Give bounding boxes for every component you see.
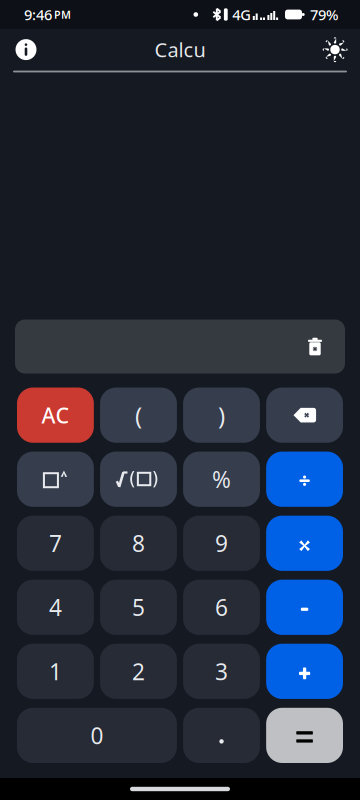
button[interactable] <box>266 580 343 635</box>
staticText: 6 <box>215 592 228 622</box>
staticText: PM <box>54 7 71 22</box>
button[interactable] <box>266 644 343 699</box>
staticText: % <box>212 464 231 494</box>
staticText: 4 <box>49 592 62 622</box>
staticText: 9 <box>215 528 228 558</box>
button[interactable]: 7 <box>17 516 94 571</box>
button[interactable]: AC <box>17 387 94 443</box>
button[interactable]: 2 <box>100 644 177 699</box>
button[interactable]: Toggle light and dark theme <box>323 38 347 62</box>
button[interactable]: Clear calculation history <box>298 319 332 373</box>
staticText: 5 <box>132 592 145 622</box>
staticText: 0 <box>90 720 103 750</box>
staticText: 1 <box>49 656 62 686</box>
button[interactable]: ( <box>100 387 177 443</box>
staticText: 9:46 <box>24 5 52 24</box>
button[interactable]: 5 <box>100 580 177 635</box>
button[interactable]: 9 <box>183 516 260 571</box>
button[interactable]: % <box>183 452 260 507</box>
button[interactable] <box>183 708 260 763</box>
button[interactable]: 1 <box>17 644 94 699</box>
button[interactable] <box>266 708 343 763</box>
button[interactable] <box>266 452 343 507</box>
button[interactable]: 3 <box>183 644 260 699</box>
button[interactable]: About this calculator <box>13 37 39 63</box>
button[interactable] <box>266 516 343 571</box>
button[interactable] <box>266 387 343 443</box>
staticText: 79% <box>310 5 338 24</box>
button[interactable]: 6 <box>183 580 260 635</box>
staticText: ( <box>135 399 142 431</box>
button[interactable] <box>17 452 94 507</box>
staticText: 7 <box>49 528 62 558</box>
staticText: 8 <box>132 528 145 558</box>
button[interactable]: 0 <box>17 708 177 763</box>
staticText: AC <box>41 401 69 429</box>
button[interactable] <box>100 452 177 507</box>
staticText: 4G <box>232 5 251 24</box>
staticText: 2 <box>132 656 145 686</box>
staticText: 3 <box>215 656 228 686</box>
button[interactable]: 8 <box>100 516 177 571</box>
staticText: ) <box>218 399 225 431</box>
staticText: Calcu <box>154 36 205 63</box>
button[interactable]: ) <box>183 387 260 443</box>
button[interactable]: 4 <box>17 580 94 635</box>
